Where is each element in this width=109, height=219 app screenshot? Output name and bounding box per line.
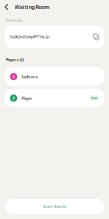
staticText: Waiting Room <box>14 3 49 11</box>
staticText: Sadhana <box>21 74 37 79</box>
button[interactable]: Back <box>2 0 11 14</box>
button[interactable]: S <box>4 67 104 86</box>
button[interactable]: P <box>4 89 104 107</box>
button[interactable]: Copy room code <box>91 32 101 42</box>
staticText: 1aZAQtx65abpRPT14z2p <box>9 34 49 39</box>
staticText: Start Battle <box>43 204 66 209</box>
staticText: Room Code <box>6 19 23 22</box>
button[interactable]: Start Battle <box>4 199 104 214</box>
staticText: S <box>13 74 15 79</box>
staticText: Players (2) <box>5 57 23 62</box>
staticText: P <box>13 95 15 101</box>
staticText: HOST <box>91 96 98 100</box>
staticText: Player <box>21 95 32 101</box>
